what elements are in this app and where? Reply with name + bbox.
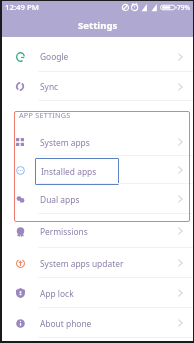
button[interactable]: Permissions — [2, 214, 193, 248]
staticText: System apps updater — [40, 258, 124, 269]
button[interactable]: Sync — [2, 72, 193, 101]
staticText: Sync — [40, 81, 59, 92]
staticText: 79% — [177, 3, 190, 12]
staticText: Settings — [78, 19, 118, 32]
staticText: Installed apps — [41, 166, 97, 177]
button[interactable]: About phone — [2, 308, 193, 338]
button[interactable]: System apps — [2, 128, 193, 156]
button[interactable]: System apps updater — [2, 248, 193, 278]
staticText: 12:49 PM — [5, 2, 39, 13]
staticText: Dual apps — [40, 194, 80, 205]
button[interactable]: Installed apps — [2, 156, 193, 184]
button[interactable]: Dual apps — [2, 184, 193, 214]
staticText: About phone — [40, 318, 92, 329]
staticText: Permissions — [40, 226, 88, 237]
staticText: System apps — [40, 137, 90, 148]
staticText: Google — [40, 51, 69, 62]
button[interactable]: Google — [2, 41, 193, 72]
button[interactable]: App lock — [2, 278, 193, 308]
staticText: APP SETTINGS — [19, 110, 71, 120]
staticText: App lock — [40, 288, 74, 299]
